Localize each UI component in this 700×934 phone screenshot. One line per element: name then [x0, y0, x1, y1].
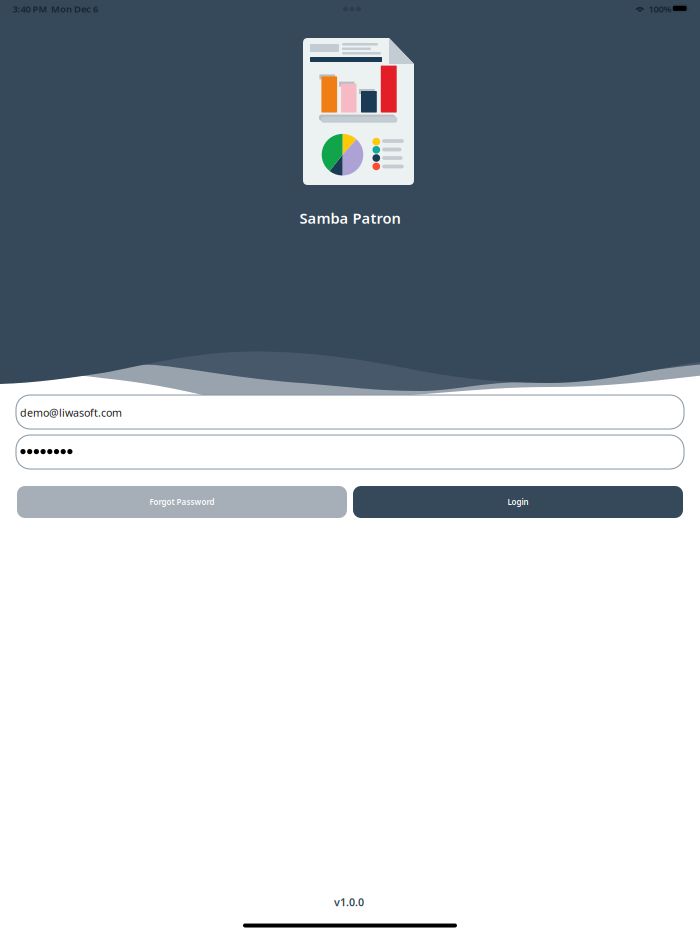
button[interactable]: Forgot Password	[17, 486, 347, 518]
staticText: v1.0.0	[334, 895, 364, 909]
staticText: 3:40 PM	[12, 3, 47, 15]
staticText: Mon Dec 6	[51, 3, 98, 15]
staticText: Forgot Password	[149, 497, 214, 507]
staticText: Samba Patron	[299, 208, 400, 228]
staticText: 100%	[648, 3, 671, 15]
staticText: Login	[507, 497, 528, 507]
button[interactable]: Login	[353, 486, 683, 518]
staticText: demo@liwasoft.com	[20, 405, 122, 420]
